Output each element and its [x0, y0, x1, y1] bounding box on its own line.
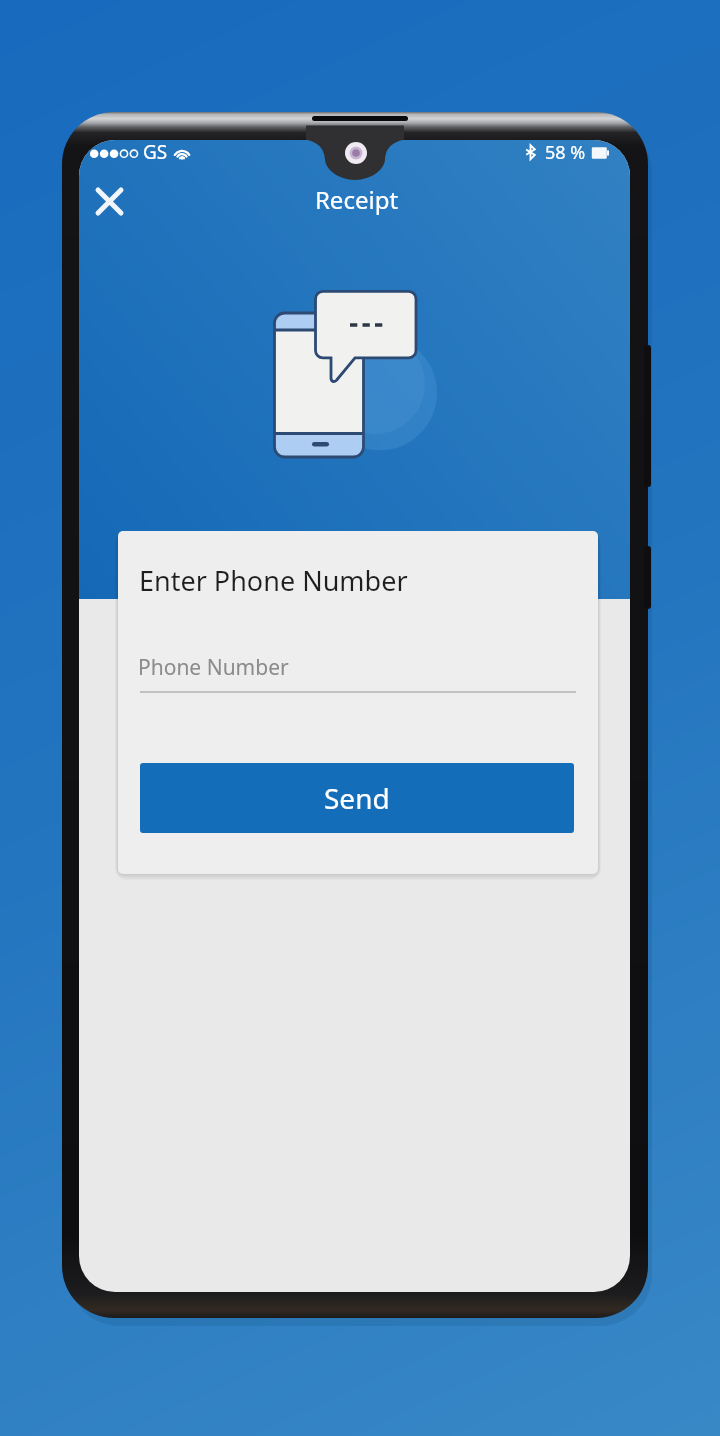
staticText: Send — [324, 779, 390, 817]
staticText: GS — [143, 140, 168, 165]
button[interactable]: Send — [140, 763, 574, 833]
staticText: Enter Phone Number — [139, 562, 408, 599]
staticText: Phone Number — [138, 653, 289, 682]
staticText: Receipt — [81, 183, 630, 216]
staticText: 58 % — [545, 140, 586, 165]
button[interactable]: Close — [83, 175, 135, 227]
